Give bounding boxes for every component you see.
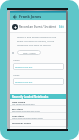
button[interactable]: Select from list — [13, 63, 64, 70]
staticText: Record an Event / Incident — [19, 25, 56, 29]
staticText: Recently Loaded Notebooks — [12, 95, 49, 99]
staticText: Low Stock — [12, 114, 25, 117]
button[interactable]: Select from list — [13, 78, 64, 85]
button[interactable]: Low Stock — [10, 113, 66, 119]
staticText: event you wish to record, or the — [17, 39, 55, 42]
staticText: Select from list — [15, 80, 33, 83]
button[interactable]: Back — [12, 14, 18, 20]
staticText: notebook you wish to add to. — [17, 43, 52, 46]
staticText: Select a title below relating to the — [17, 35, 57, 38]
staticText: Select from list — [15, 65, 33, 68]
staticText: Name — [13, 59, 20, 62]
staticText: Sub caption text here goes — [12, 103, 35, 105]
button[interactable]: Site - Work — [10, 49, 66, 56]
button[interactable]: Bio Stock — [10, 106, 66, 112]
staticText: Bio Stock — [12, 107, 23, 110]
staticText: Description including time of day — [12, 110, 40, 112]
staticText: Site - Work — [23, 51, 36, 54]
button[interactable]: New Office — [10, 99, 66, 105]
staticText: New Office — [12, 100, 26, 103]
button[interactable]: Walkover Check — [10, 120, 66, 126]
staticText: Walkover Check — [12, 121, 32, 124]
staticText: Frank Jones — [19, 14, 42, 19]
button[interactable]: Record an Event / Incident — [10, 21, 66, 32]
staticText: Minor issues recording defect listing — [12, 117, 43, 119]
staticText: Edit — [59, 25, 64, 29]
staticText: Notify — [13, 74, 20, 77]
